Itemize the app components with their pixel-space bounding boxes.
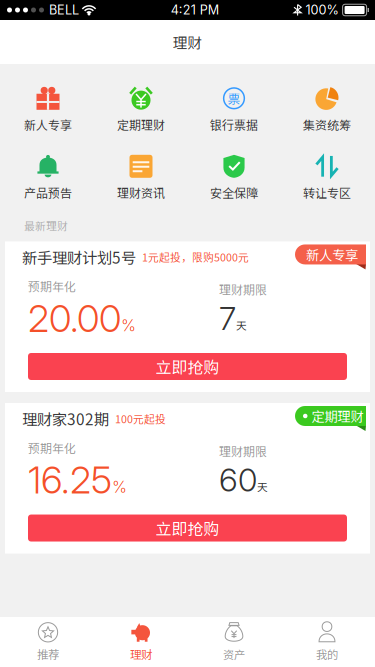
staticText: 7: [219, 299, 236, 338]
staticText: BELL: [49, 2, 79, 18]
staticText: 产品预告: [24, 184, 72, 201]
staticText: 新人专享: [24, 116, 72, 133]
button[interactable]: 立即抢购: [5, 341, 370, 392]
button[interactable]: 理财资讯: [94, 142, 187, 210]
button[interactable]: 立即抢购: [5, 502, 370, 553]
staticText: 推荐: [37, 646, 59, 662]
staticText: 集资统筹: [303, 116, 351, 133]
staticText: %: [112, 477, 127, 497]
staticText: 最新理财: [24, 218, 68, 233]
staticText: 20.00: [28, 296, 121, 341]
staticText: 银行票据: [210, 116, 258, 133]
staticText: 100%: [306, 2, 339, 18]
staticText: 安全保障: [210, 184, 258, 201]
staticText: 我的: [316, 646, 338, 662]
staticText: 票: [227, 89, 240, 107]
staticText: 理财期限: [219, 281, 267, 298]
staticText: 新手理财计划5号: [22, 246, 136, 268]
button[interactable]: 票: [187, 74, 280, 142]
button[interactable]: 理财: [94, 617, 187, 667]
staticText: 理财期限: [219, 442, 267, 460]
staticText: 立即抢购: [155, 516, 219, 540]
button[interactable]: 推荐: [1, 617, 94, 667]
staticText: 定期理财: [117, 116, 165, 133]
staticText: 100元起投: [115, 411, 166, 426]
staticText: 预期年化: [28, 277, 76, 295]
staticText: 预期年化: [28, 439, 76, 456]
button[interactable]: 资产: [187, 617, 280, 667]
button[interactable]: 我的: [280, 617, 373, 667]
button[interactable]: 安全保障: [187, 142, 280, 210]
staticText: 新人专享: [306, 245, 358, 264]
button[interactable]: 集资统筹: [280, 74, 373, 142]
staticText: 理财家302期: [22, 407, 109, 430]
button[interactable]: 定期理财: [94, 74, 187, 142]
staticText: 资产: [223, 646, 245, 662]
button[interactable]: 新人专享: [1, 74, 94, 142]
staticText: 理财: [130, 646, 152, 662]
staticText: 立即抢购: [155, 355, 219, 378]
staticText: 60: [219, 461, 257, 499]
button[interactable]: 产品预告: [1, 142, 94, 210]
staticText: 1元起投，限购5000元: [142, 249, 249, 265]
staticText: 理财资讯: [117, 184, 165, 201]
staticText: 天: [257, 479, 268, 494]
staticText: 定期理财: [311, 406, 363, 426]
staticText: 理财: [172, 31, 202, 53]
staticText: 4:21 PM: [171, 2, 219, 18]
staticText: %: [121, 316, 136, 335]
staticText: 天: [236, 317, 247, 333]
staticText: 转让专区: [303, 184, 351, 201]
staticText: 16.25: [28, 457, 112, 503]
button[interactable]: 转让专区: [280, 142, 373, 210]
